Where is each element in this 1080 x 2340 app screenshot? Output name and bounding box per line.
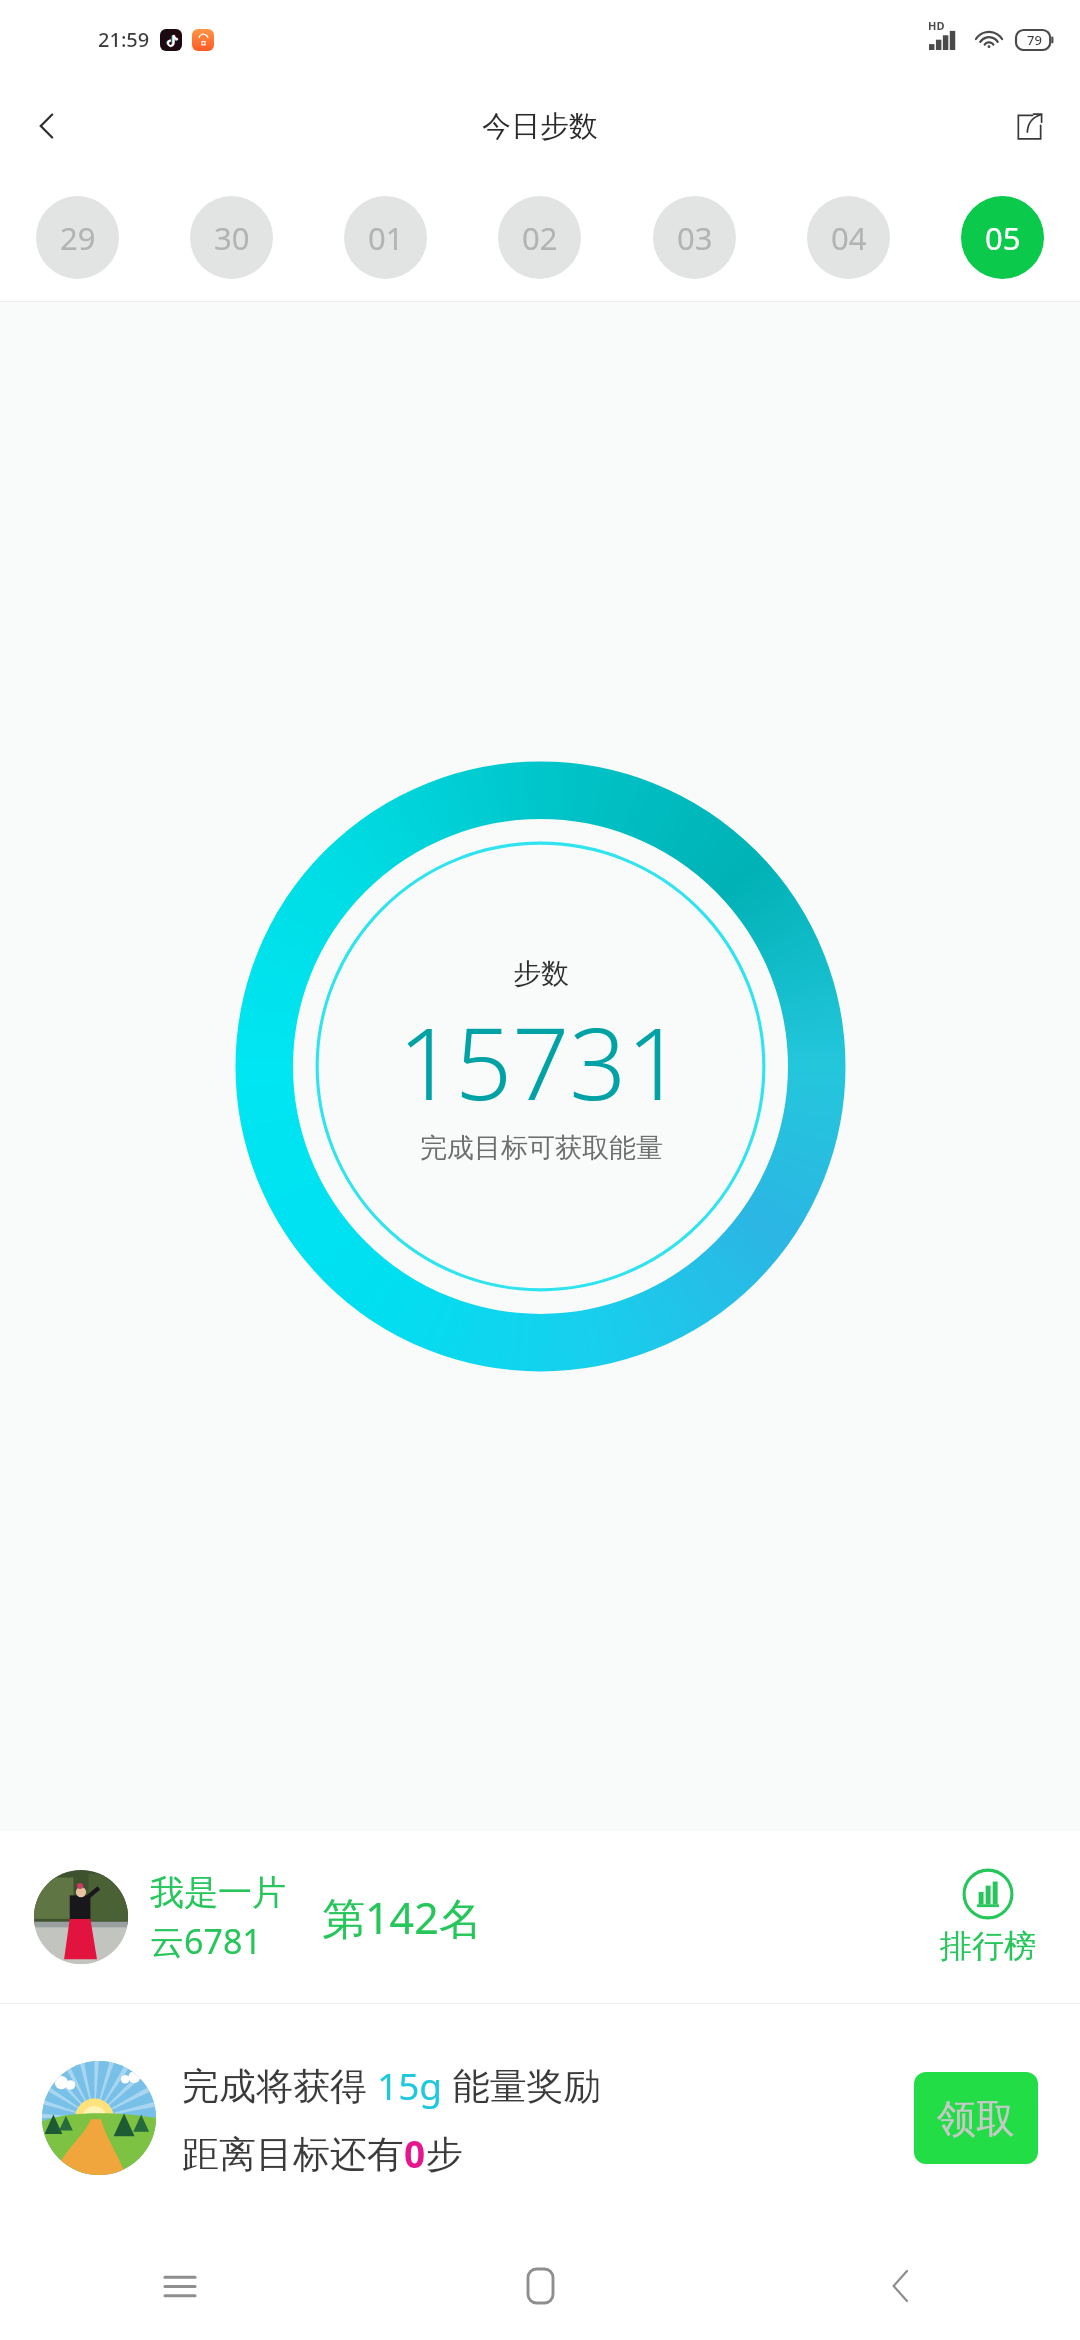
staticText: 步数 [513, 956, 569, 991]
staticText: 03 [677, 217, 713, 259]
button[interactable]: 02 [498, 196, 581, 279]
button[interactable]: 29 [36, 196, 119, 279]
staticText: 79 [1027, 31, 1042, 49]
staticText: 15731 [398, 993, 684, 1129]
button[interactable]: 排行榜 [940, 1868, 1036, 1966]
button[interactable]: 05 [961, 196, 1044, 279]
staticText: 02 [522, 217, 558, 259]
button[interactable]: 04 [807, 196, 890, 279]
staticText: 步 [426, 2131, 463, 2178]
button[interactable]: 01 [344, 196, 427, 279]
staticText: 15g [377, 2060, 443, 2110]
button[interactable]: 我是一片 云6781 [0, 1831, 1080, 2003]
staticText: 完成将获得 [182, 2059, 377, 2110]
staticText: 29 [60, 217, 96, 259]
staticText: 距离目标还有 [182, 2131, 404, 2178]
staticText: 0 [404, 2128, 426, 2178]
staticText: 21:59 [98, 26, 150, 53]
staticText: 04 [831, 217, 867, 259]
staticText: 排行榜 [940, 1926, 1036, 1966]
button[interactable]: Back [14, 93, 80, 159]
staticText: 05 [985, 217, 1021, 259]
button[interactable]: Recents [0, 2232, 360, 2340]
staticText: 30 [214, 217, 250, 259]
button[interactable]: Share [998, 95, 1060, 157]
staticText: 领取 [937, 2094, 1015, 2143]
button[interactable]: 03 [653, 196, 736, 279]
button[interactable]: 30 [190, 196, 273, 279]
staticText: HD [928, 18, 945, 33]
staticText: 完成目标可获取能量 [420, 1131, 663, 1165]
staticText: 能量奖励 [443, 2059, 601, 2110]
staticText: 今日步数 [482, 108, 598, 145]
staticText: 01 [368, 217, 404, 259]
button[interactable]: 领取 [914, 2072, 1038, 2164]
button[interactable]: Home [360, 2232, 720, 2340]
staticText: 我是一片 云6781 [150, 1871, 286, 1964]
button[interactable]: Back [720, 2232, 1080, 2340]
staticText: 第142名 [322, 1888, 482, 1947]
